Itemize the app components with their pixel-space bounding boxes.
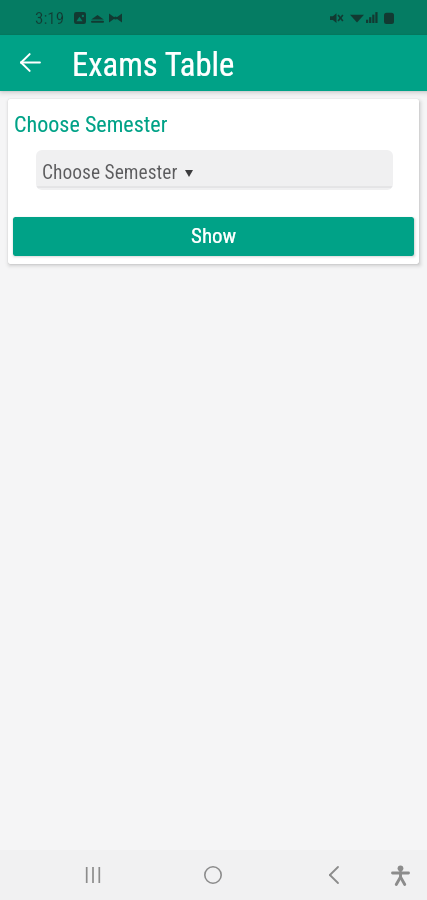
button[interactable]: Recent apps xyxy=(33,850,153,900)
staticText: Choose Semester xyxy=(42,161,178,184)
staticText: 3:19 xyxy=(35,8,65,28)
staticText: Exams Table xyxy=(72,46,235,84)
button[interactable]: Show xyxy=(13,217,414,256)
button[interactable]: Choose Semester xyxy=(36,150,393,190)
button[interactable]: Back xyxy=(273,850,393,900)
staticText: Choose Semester xyxy=(14,111,168,137)
button[interactable]: Navigate up xyxy=(10,43,50,83)
staticText: Show xyxy=(191,224,237,249)
button[interactable]: Home xyxy=(153,850,273,900)
button[interactable]: Accessibility xyxy=(371,850,427,900)
